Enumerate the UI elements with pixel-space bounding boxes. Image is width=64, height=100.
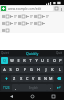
button[interactable]: Shift [1, 75, 11, 82]
button[interactable]: Quickly [10, 50, 54, 56]
button[interactable]: Space [19, 84, 47, 91]
button[interactable]: Format tool 0 [1, 21, 5, 25]
button[interactable]: D [14, 66, 21, 73]
button[interactable]: Format tool 6 [25, 14, 29, 18]
button[interactable]: Recent apps [43, 92, 64, 100]
button[interactable]: Comma [12, 84, 19, 91]
staticText: J [45, 67, 47, 72]
button[interactable]: Format tool 5 [21, 14, 25, 18]
staticText: I [47, 58, 49, 63]
staticText: G [30, 67, 33, 72]
staticText: X [20, 76, 23, 81]
button[interactable]: Format tool 0 [1, 14, 5, 18]
staticText: F [24, 67, 26, 72]
button[interactable]: J [42, 66, 49, 73]
button[interactable]: Format tool 7 [29, 21, 33, 25]
staticText: K [51, 67, 54, 72]
button[interactable]: P [57, 57, 63, 64]
staticText: S [9, 67, 12, 72]
button[interactable]: Format tool 7 [29, 14, 33, 18]
button[interactable]: Z [11, 75, 18, 82]
button[interactable]: Format tool 10 [41, 14, 45, 18]
button[interactable]: More options [59, 7, 63, 11]
button[interactable]: B [36, 75, 42, 82]
button[interactable]: E [15, 57, 21, 64]
button[interactable]: V [30, 75, 36, 82]
staticText: ?123 [3, 86, 10, 90]
button[interactable]: Format tool 5 [21, 21, 25, 25]
staticText: A [3, 67, 6, 72]
button[interactable]: ?123 [1, 84, 12, 91]
button[interactable]: www.example.com/edit [8, 6, 52, 11]
button[interactable]: Q [1, 57, 8, 64]
staticText: N [44, 76, 47, 81]
button[interactable]: Period [47, 84, 53, 91]
button[interactable]: Format tool 2 [9, 21, 13, 25]
button[interactable]: Format tool 1 [5, 14, 9, 18]
staticText: B [38, 76, 41, 81]
staticText: , [15, 85, 16, 90]
button[interactable]: Quiet [0, 50, 10, 56]
button[interactable]: Y [33, 57, 39, 64]
staticText: Quiet [1, 51, 9, 55]
button[interactable]: Home [22, 92, 43, 100]
button[interactable]: Format tool 0 [1, 28, 5, 32]
staticText: O [53, 58, 56, 63]
button[interactable]: Format tool 3 [13, 14, 17, 18]
staticText: www.example.com/edit [8, 7, 42, 11]
button[interactable]: T [27, 57, 33, 64]
button[interactable]: Format tool 1 [5, 28, 9, 32]
staticText: U [41, 58, 44, 63]
button[interactable]: H [35, 66, 42, 73]
button[interactable]: N [42, 75, 48, 82]
staticText: D [16, 67, 19, 72]
button[interactable]: Format tool 1 [5, 21, 9, 25]
button[interactable]: I [45, 57, 51, 64]
button[interactable]: W [8, 57, 15, 64]
staticText: P [59, 58, 62, 63]
button[interactable]: Format tool 10 [41, 21, 45, 25]
button[interactable]: Backspace [54, 75, 63, 82]
button[interactable]: G [28, 66, 35, 73]
button[interactable]: Format tool 4 [17, 14, 21, 18]
button[interactable]: U [39, 57, 45, 64]
button[interactable]: X [18, 75, 24, 82]
button[interactable]: Enter [53, 84, 63, 91]
button[interactable]: Format tool 9 [37, 14, 41, 18]
button[interactable]: Format tool 4 [17, 21, 21, 25]
staticText: H [37, 67, 40, 72]
button[interactable]: Format tool 3 [13, 21, 17, 25]
staticText: C [26, 76, 29, 81]
button[interactable]: L [56, 66, 63, 73]
button[interactable]: F [21, 66, 28, 73]
button[interactable]: A [1, 66, 7, 73]
button[interactable]: S [7, 66, 14, 73]
button[interactable]: Tabs [54, 6, 59, 11]
button[interactable]: Quit [54, 50, 64, 56]
staticText: English [29, 86, 38, 90]
staticText: Quickly [26, 51, 39, 56]
button[interactable]: R [21, 57, 27, 64]
staticText: R [23, 58, 26, 63]
button[interactable]: Format tool 2 [9, 14, 13, 18]
staticText: L [59, 67, 61, 72]
staticText: Z [13, 76, 16, 81]
staticText: Q [3, 58, 6, 63]
button[interactable]: K [49, 66, 56, 73]
staticText: T [29, 58, 32, 63]
button[interactable]: Format tool 11 [45, 14, 49, 18]
button[interactable]: O [51, 57, 57, 64]
button[interactable]: Format tool 8 [33, 21, 37, 25]
staticText: M [49, 76, 53, 81]
button[interactable]: Format tool 9 [37, 21, 41, 25]
staticText: Y [35, 58, 38, 63]
staticText: V [32, 76, 35, 81]
button[interactable]: Format tool 8 [33, 14, 37, 18]
button[interactable]: C [24, 75, 30, 82]
button[interactable]: Site icon [1, 6, 6, 11]
button[interactable]: M [48, 75, 54, 82]
staticText: Quit [56, 51, 63, 55]
button[interactable]: Format tool 6 [25, 21, 29, 25]
staticText: . [50, 85, 51, 90]
button[interactable]: Back [0, 92, 22, 100]
